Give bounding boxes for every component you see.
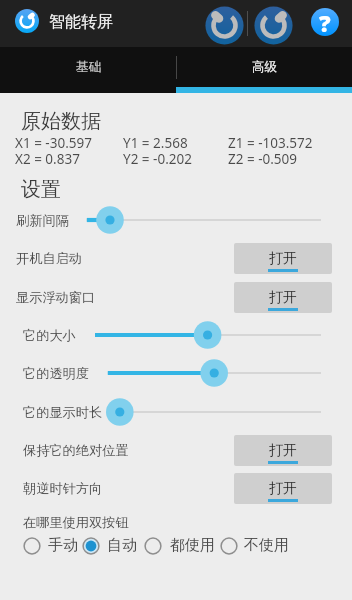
staticText: 打开 — [269, 250, 297, 268]
button[interactable]: 不使用 — [217, 533, 291, 559]
staticText: 设置 — [21, 177, 61, 202]
staticText: 刷新间隔 — [16, 212, 69, 229]
button[interactable]: Rotate counter-clockwise — [200, 0, 247, 47]
staticText: 它的显示时长 — [23, 404, 103, 421]
staticText: 高级 — [252, 59, 277, 75]
staticText: 打开 — [269, 442, 297, 460]
button[interactable]: 打开 — [234, 282, 332, 313]
staticText: Y2 = -0.202 — [123, 150, 192, 168]
button[interactable]: 都使用 — [141, 533, 217, 559]
staticText: X1 = -30.597 — [15, 134, 92, 152]
staticText: X2 = 0.837 — [15, 150, 80, 168]
button[interactable]: 它的透明度 — [0, 354, 352, 392]
button[interactable]: Help — [302, 0, 347, 47]
staticText: 手动 — [48, 536, 78, 555]
staticText: 都使用 — [170, 536, 215, 555]
staticText: 不使用 — [244, 536, 289, 555]
staticText: 朝逆时针方向 — [23, 480, 103, 497]
staticText: 打开 — [269, 480, 297, 498]
button[interactable]: 自动 — [79, 533, 139, 559]
button[interactable]: 刷新间隔 — [0, 201, 352, 239]
staticText: 它的透明度 — [23, 365, 89, 382]
staticText: Z1 = -103.572 — [228, 134, 313, 152]
staticText: 自动 — [107, 536, 137, 555]
staticText: 基础 — [76, 59, 101, 75]
button[interactable]: 打开 — [234, 435, 332, 466]
staticText: 显示浮动窗口 — [16, 289, 96, 306]
button[interactable]: 它的显示时长 — [0, 393, 352, 431]
staticText: 开机自启动 — [16, 250, 82, 267]
button[interactable]: 打开 — [234, 243, 332, 274]
staticText: 原始数据 — [21, 109, 101, 134]
button[interactable]: 打开 — [234, 473, 332, 504]
staticText: Y1 = 2.568 — [123, 134, 188, 152]
staticText: 智能转屏 — [49, 12, 113, 32]
staticText: Z2 = -0.509 — [228, 150, 298, 168]
staticText: 它的大小 — [23, 327, 76, 344]
staticText: 打开 — [269, 289, 297, 307]
staticText: 保持它的绝对位置 — [23, 442, 129, 459]
button[interactable]: 高级 — [176, 47, 352, 93]
button[interactable]: Rotate clockwise — [250, 0, 297, 47]
button[interactable]: 手动 — [20, 533, 80, 559]
button[interactable]: 基础 — [0, 47, 176, 93]
staticText: ? — [319, 7, 331, 35]
button[interactable]: 它的大小 — [0, 316, 352, 354]
staticText: 在哪里使用双按钮 — [23, 514, 129, 531]
